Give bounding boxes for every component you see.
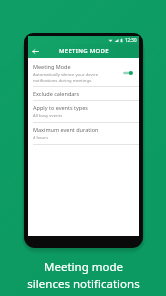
- staticText: silences notifications: [27, 276, 140, 292]
- staticText: Automatically silence your device notifi…: [33, 72, 119, 83]
- button[interactable]: Exclude calendars: [28, 87, 139, 100]
- staticText: Apply to events types: [33, 104, 88, 111]
- staticText: 12:30: [125, 37, 137, 43]
- staticText: Meeting mode: [44, 259, 123, 275]
- staticText: Exclude calendars: [33, 90, 80, 97]
- staticText: MEETING MODE: [59, 47, 109, 55]
- staticText: All busy events: [33, 113, 63, 119]
- staticText: Maximum event duration: [33, 126, 99, 133]
- button[interactable]: Back: [30, 46, 41, 57]
- staticText: Meeting Mode: [33, 63, 71, 70]
- button[interactable]: Meeting Mode toggle: [122, 69, 134, 77]
- button[interactable]: Meeting Mode: [28, 60, 139, 86]
- button[interactable]: Maximum event duration: [28, 123, 139, 144]
- staticText: 4 hours: [33, 135, 48, 141]
- button[interactable]: Apply to events types: [28, 101, 139, 122]
